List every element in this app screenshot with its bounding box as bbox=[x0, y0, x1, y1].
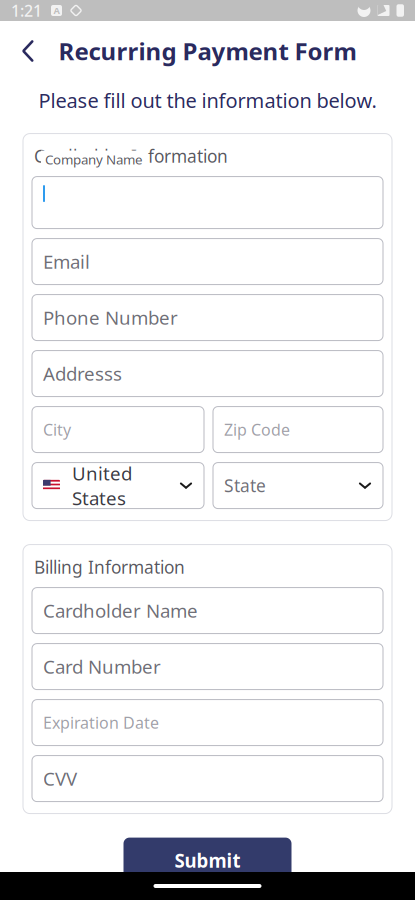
button[interactable]: Back bbox=[6, 29, 50, 73]
staticText: United States bbox=[72, 461, 132, 510]
staticText: Company Name bbox=[45, 151, 143, 168]
button[interactable]: State bbox=[213, 463, 383, 509]
staticText: Recurring Payment Form bbox=[58, 35, 356, 67]
button[interactable]: Submit bbox=[123, 838, 291, 884]
staticText: State bbox=[224, 474, 266, 497]
staticText: Email bbox=[43, 249, 90, 274]
staticText: Phone Number bbox=[43, 305, 178, 330]
staticText: 1:21 bbox=[11, 0, 42, 21]
staticText: Please fill out the information below. bbox=[38, 87, 376, 114]
staticText: Cardholder Information bbox=[34, 145, 228, 168]
staticText: Expiration Date bbox=[43, 712, 159, 733]
staticText: Cardholder Name bbox=[43, 598, 198, 623]
staticText: Submit bbox=[174, 848, 240, 873]
staticText: City bbox=[43, 419, 71, 440]
staticText: Addresss bbox=[43, 361, 122, 386]
staticText: Zip Code bbox=[224, 419, 290, 440]
staticText: Billing Information bbox=[34, 556, 185, 579]
staticText: CVV bbox=[43, 766, 77, 791]
staticText: Card Number bbox=[43, 654, 161, 679]
button[interactable]: United States bbox=[32, 463, 204, 509]
staticText: A bbox=[53, 4, 59, 17]
